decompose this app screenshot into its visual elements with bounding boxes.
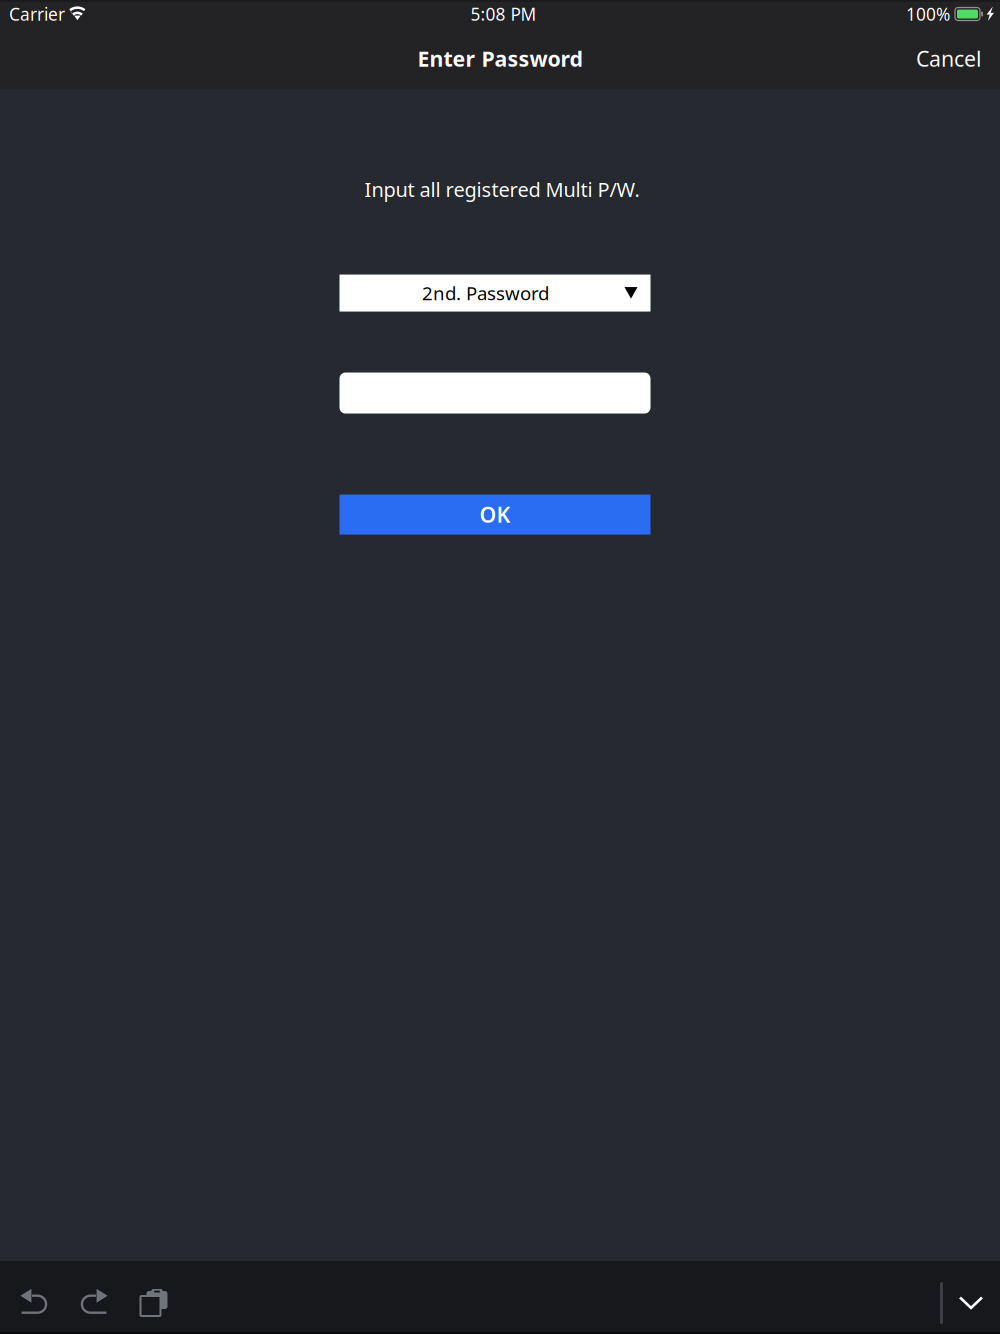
button[interactable]: Paste [124,1266,184,1334]
button[interactable]: Hide keyboard [943,1266,999,1334]
button[interactable]: Redo [64,1266,124,1334]
button[interactable]: Password [339,373,650,414]
button[interactable]: Cancel [898,32,1000,85]
staticText: OK [479,500,510,529]
button[interactable]: Undo [4,1266,64,1334]
staticText: Cancel [916,44,982,73]
staticText: Carrier [9,2,65,25]
staticText: 5:08 PM [470,2,536,25]
staticText: Enter Password [417,44,582,73]
staticText: 100% [906,2,950,25]
staticText: Input all registered Multi P/W. [364,176,639,203]
button[interactable]: OK [339,495,650,535]
button[interactable]: 2nd. Password [339,275,650,312]
staticText: 2nd. Password [422,281,549,305]
